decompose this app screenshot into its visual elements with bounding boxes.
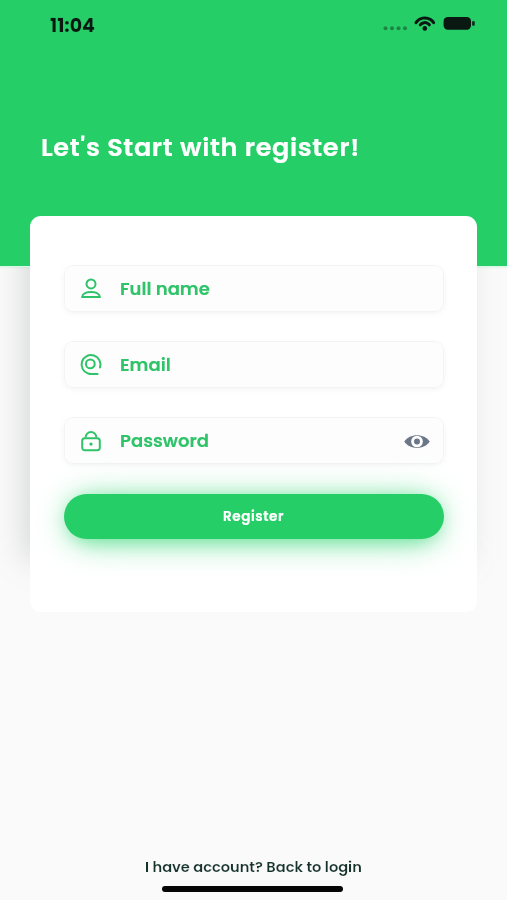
staticText: Full name bbox=[120, 276, 210, 301]
button[interactable]: Password bbox=[64, 417, 444, 464]
button[interactable]: Register bbox=[64, 494, 444, 539]
button[interactable]: Show password bbox=[397, 421, 437, 461]
staticText: Password bbox=[120, 428, 209, 453]
staticText: Register bbox=[223, 507, 285, 526]
staticText: Email bbox=[120, 352, 171, 377]
button[interactable]: I have account? Back to login bbox=[0, 853, 507, 881]
button[interactable]: Full name bbox=[64, 265, 444, 312]
staticText: I have account? Back to login bbox=[145, 857, 362, 877]
staticText: Let's Start with register! bbox=[41, 129, 360, 165]
button[interactable]: Email bbox=[64, 341, 444, 388]
staticText: 11:04 bbox=[50, 12, 95, 39]
